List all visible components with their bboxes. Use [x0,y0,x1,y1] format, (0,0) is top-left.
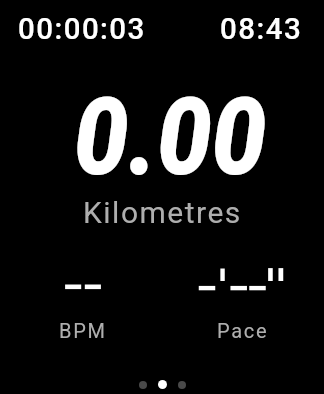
staticText: Kilometres [83,195,242,230]
button[interactable]: Heart rate not available [2,243,164,342]
staticText: 00:00:03 [18,12,146,47]
staticText: BPM [59,319,107,342]
staticText: 0.00 [74,74,266,201]
staticText: 08:43 [220,12,303,47]
other: Pace not available [198,243,288,319]
button[interactable]: Pace not available [162,243,324,342]
other: Heart rate not available [63,243,103,319]
staticText: Pace [217,319,269,342]
